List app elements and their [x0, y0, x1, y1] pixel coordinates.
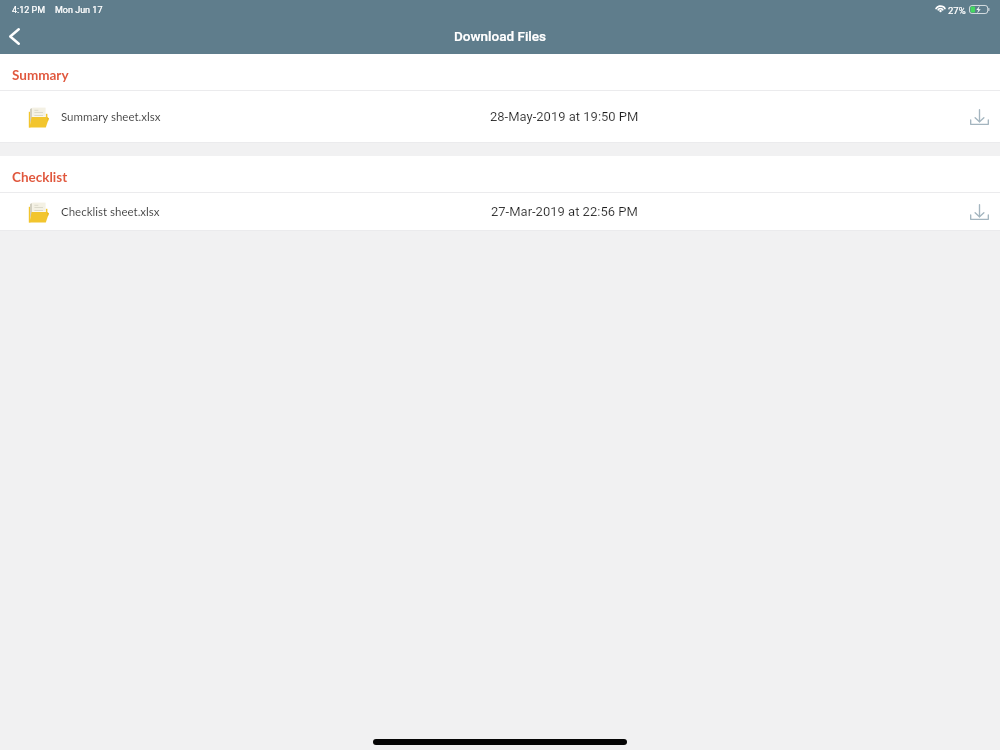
button[interactable]: Back: [0, 20, 30, 54]
button[interactable]: Download: [963, 101, 995, 133]
staticText: Download Files: [454, 28, 547, 44]
staticText: 4:12 PM: [12, 5, 46, 16]
staticText: 27-Mar-2019 at 22:56 PM: [491, 204, 638, 219]
staticText: Summary sheet.xlsx: [61, 110, 161, 124]
button[interactable]: Download: [963, 196, 995, 228]
staticText: 28-May-2019 at 19:50 PM: [490, 109, 639, 124]
button[interactable]: Summary sheet.xlsx: [0, 91, 1000, 142]
staticText: Summary: [12, 67, 69, 83]
staticText: 27%: [948, 5, 966, 16]
staticText: Mon Jun 17: [55, 5, 103, 16]
staticText: Checklist: [12, 169, 68, 185]
button[interactable]: Checklist sheet.xlsx: [0, 193, 1000, 230]
staticText: Checklist sheet.xlsx: [61, 205, 160, 219]
